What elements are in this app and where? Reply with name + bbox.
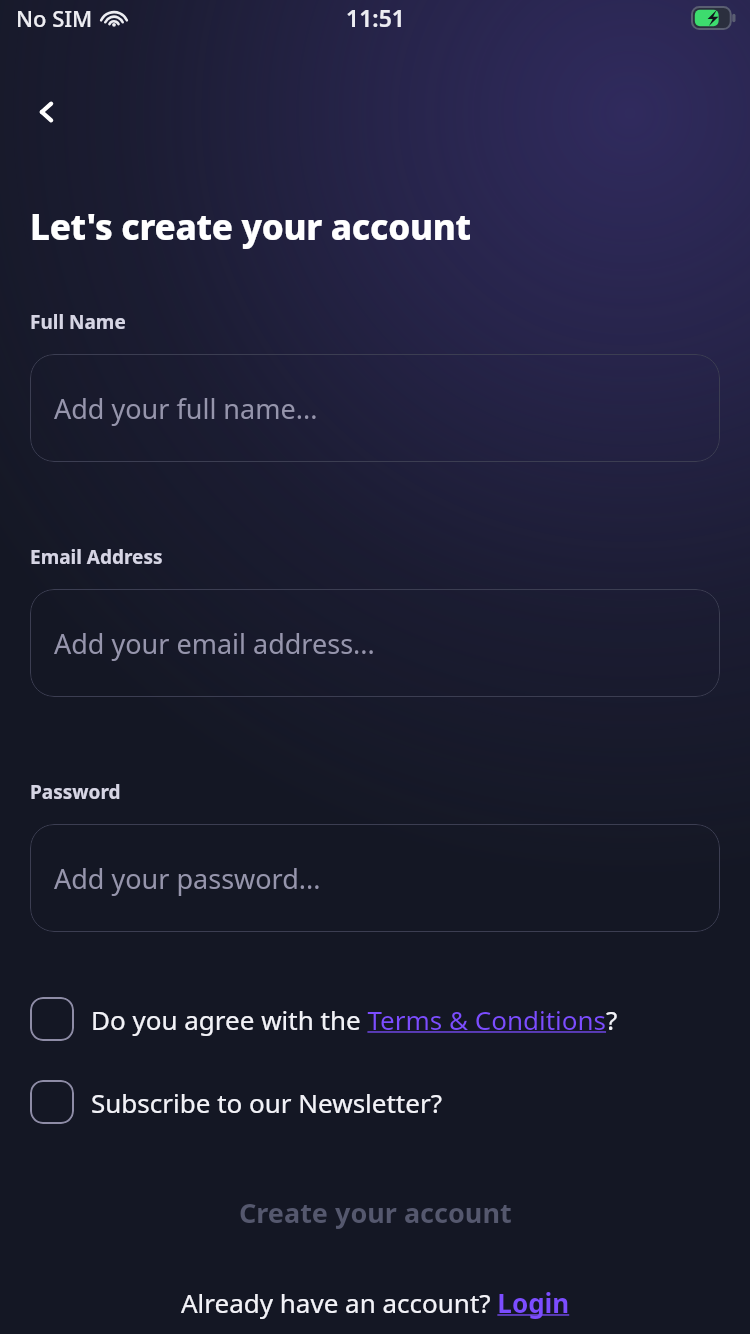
staticText: Already have an account? Login (181, 1285, 570, 1320)
button[interactable]: Create your account (30, 1176, 720, 1248)
button[interactable]: Back (18, 83, 76, 141)
button[interactable]: Already have an account? Login (181, 1285, 570, 1320)
staticText: Password (30, 779, 121, 805)
button[interactable]: Add your full name... (30, 354, 720, 462)
staticText: Let's create your account (30, 203, 471, 251)
staticText: Email Address (30, 544, 163, 570)
staticText: 11:51 (346, 2, 405, 33)
staticText: Add your full name... (54, 390, 318, 427)
staticText: Do you agree with the Terms & Conditions… (91, 1002, 618, 1037)
button[interactable]: Subscribe to our Newsletter? (30, 1076, 720, 1128)
button[interactable]: Do you agree with the Terms & Conditions… (30, 993, 720, 1045)
staticText: Subscribe to our Newsletter? (91, 1085, 442, 1120)
staticText: No SIM (16, 3, 93, 33)
button[interactable]: Add your email address... (30, 589, 720, 697)
button[interactable]: Add your password... (30, 824, 720, 932)
staticText: Add your password... (54, 860, 321, 897)
staticText: Add your email address... (54, 625, 375, 662)
staticText: Create your account (239, 1194, 512, 1231)
staticText: Full Name (30, 309, 126, 335)
